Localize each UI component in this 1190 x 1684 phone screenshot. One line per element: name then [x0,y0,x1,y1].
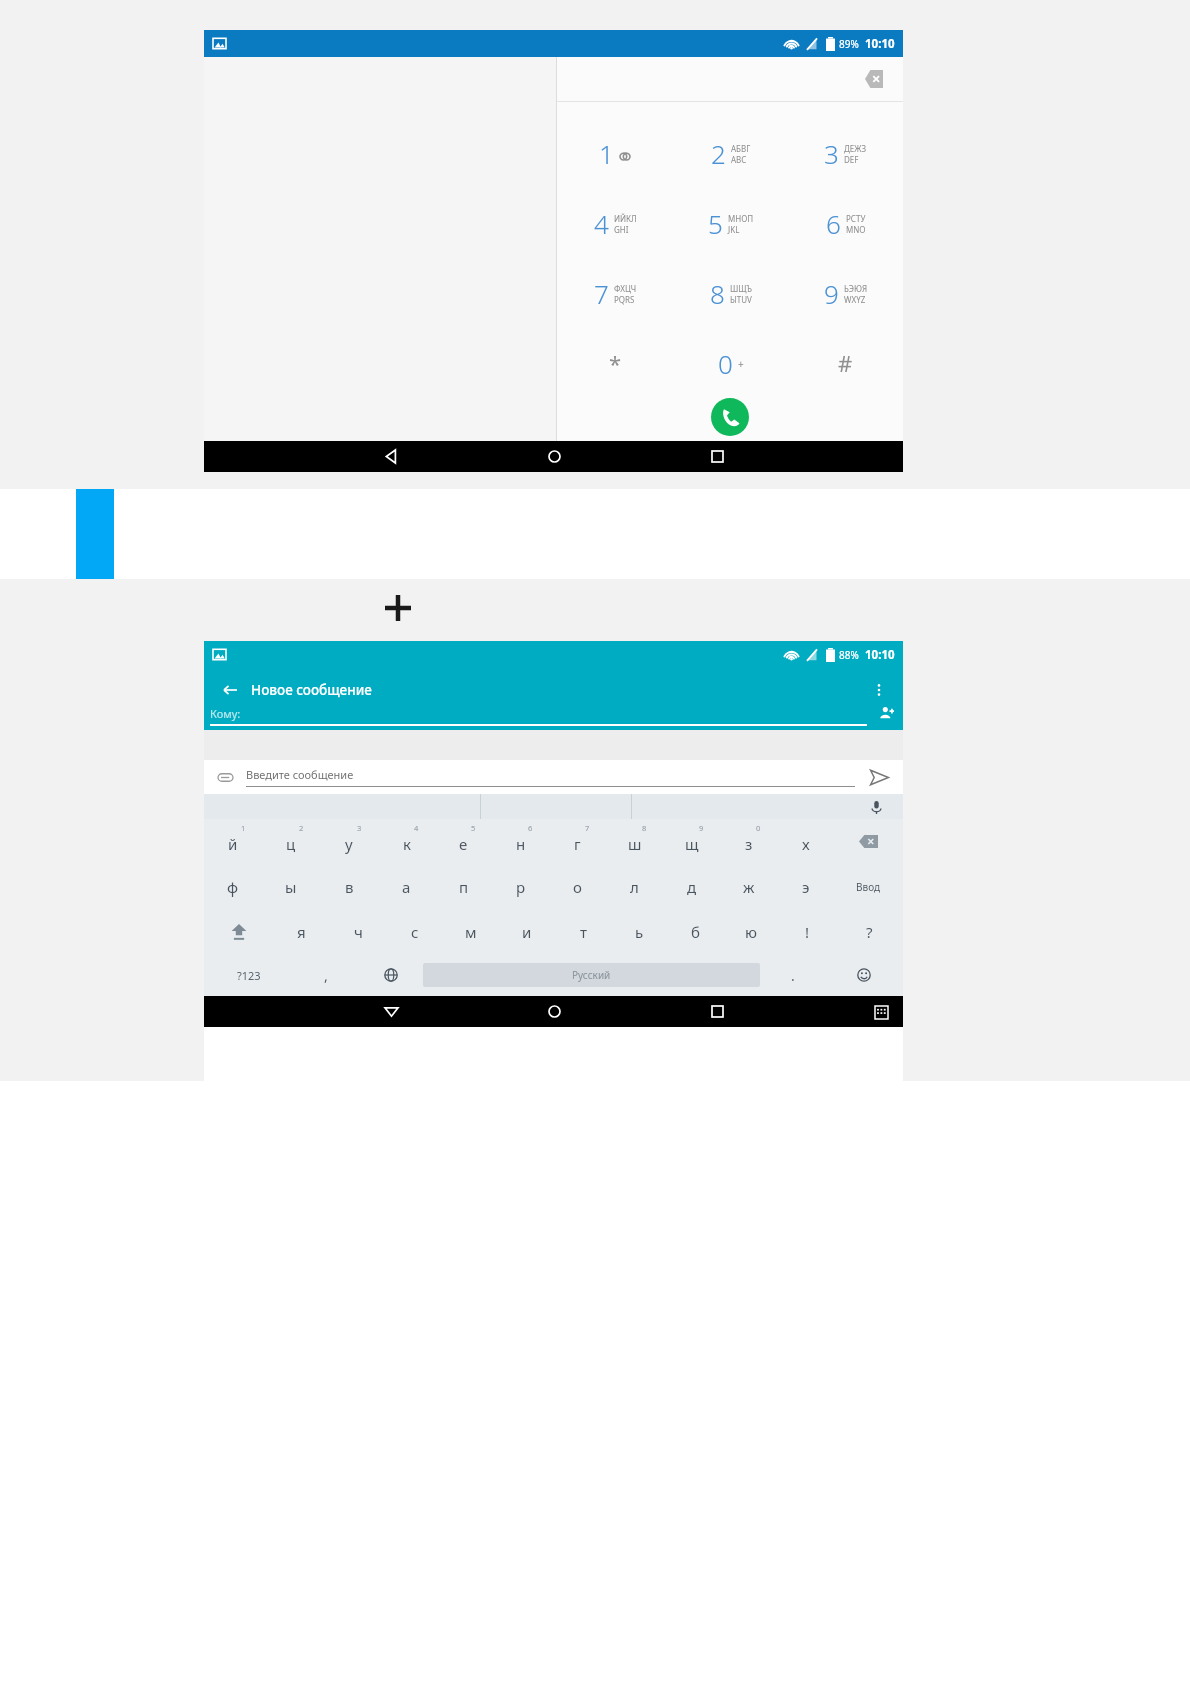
button[interactable]: ю [723,909,779,954]
button[interactable]: ?123 [204,954,294,996]
button[interactable]: Ввод [834,864,903,909]
staticText: 2 [711,136,726,171]
button[interactable]: Emoji [825,954,903,996]
button[interactable]: 0 [673,328,788,398]
button[interactable]: Voice input [865,796,887,818]
staticText: х [802,834,810,854]
button[interactable]: я [273,909,330,954]
button[interactable]: д [663,864,720,909]
button[interactable]: 5 [673,188,788,258]
button[interactable]: ! [779,909,835,954]
button[interactable]: г [549,819,606,864]
button[interactable]: More options [863,674,895,706]
staticText: МНОП [728,213,754,224]
button[interactable]: Call [711,398,749,436]
staticText: г [574,834,581,854]
button[interactable]: т [555,909,611,954]
button[interactable]: Send [865,763,893,791]
button[interactable]: Delete [861,66,887,92]
button[interactable]: 3 [788,118,903,188]
button[interactable]: * [557,328,673,398]
button[interactable]: а [378,864,435,909]
button[interactable]: б [667,909,723,954]
button[interactable]: Backspace [834,819,903,864]
button[interactable]: ч [330,909,387,954]
staticText: 5 [708,206,723,241]
staticText: 1 [241,823,246,833]
button[interactable]: е [435,819,492,864]
button[interactable]: 7 [557,258,673,328]
button[interactable]: Switch keyboard [869,1000,893,1024]
button[interactable]: Home [537,996,571,1027]
staticText: 10:10 [865,36,895,52]
staticText: о [573,877,582,897]
button[interactable]: 2 [673,118,788,188]
button[interactable]: , [294,954,358,996]
button[interactable]: Change language [358,954,423,996]
button[interactable]: х [777,819,834,864]
button[interactable]: 1 [557,118,673,188]
button[interactable]: л [606,864,663,909]
button[interactable]: щ [663,819,720,864]
button[interactable]: п [435,864,492,909]
staticText: д [687,877,697,897]
button[interactable]: # [788,328,903,398]
staticText: 3 [357,823,362,833]
staticText: ИЙКЛ [614,213,637,224]
staticText: , [324,966,328,985]
button[interactable]: к [378,819,435,864]
button[interactable]: в [320,864,378,909]
button[interactable]: с [387,909,443,954]
button[interactable]: й [204,819,262,864]
staticText: н [516,834,526,854]
button[interactable]: ь [611,909,667,954]
staticText: 4 [594,206,609,241]
button[interactable]: и [499,909,555,954]
button[interactable]: Add contact [875,702,897,724]
button[interactable]: Back [374,441,408,472]
button[interactable]: ы [262,864,320,909]
staticText: 8 [642,823,647,833]
button[interactable]: Back [374,996,408,1027]
button[interactable]: н [492,819,549,864]
staticText: # [838,348,853,378]
button[interactable]: м [443,909,499,954]
button[interactable]: 8 [673,258,788,328]
staticText: 5 [471,823,476,833]
button[interactable]: 9 [788,258,903,328]
button[interactable]: ц [262,819,320,864]
staticText: MNO [846,224,866,235]
button[interactable]: ж [720,864,777,909]
staticText: п [459,877,469,897]
button[interactable]: Back [218,672,372,708]
button[interactable]: э [777,864,834,909]
staticText: АБВГ [731,143,751,154]
staticText: ж [743,877,755,897]
button[interactable]: 4 [557,188,673,258]
button[interactable]: у [320,819,378,864]
staticText: ш [628,834,642,854]
button[interactable]: ? [835,909,903,954]
staticText: к [403,834,411,854]
staticText: 7 [585,823,590,833]
button[interactable]: Attach [214,766,236,788]
staticText: ц [286,834,296,854]
button[interactable]: Shift [204,909,273,954]
button[interactable]: . [760,954,825,996]
button[interactable]: ш [606,819,663,864]
button[interactable]: ф [204,864,262,909]
button[interactable]: Русский [423,963,760,987]
button[interactable]: Recents [700,441,734,472]
staticText: Ввод [856,880,881,894]
staticText: 0 [756,823,761,833]
button[interactable]: Recents [700,996,734,1027]
staticText: щ [685,834,699,854]
button[interactable]: р [492,864,549,909]
staticText: ы [285,877,297,897]
staticText: 3 [824,136,839,171]
button[interactable]: Home [537,441,571,472]
staticText: GHI [614,224,629,235]
button[interactable]: 6 [788,188,903,258]
button[interactable]: з [720,819,777,864]
button[interactable]: о [549,864,606,909]
